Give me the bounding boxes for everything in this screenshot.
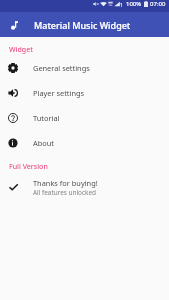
staticText: All features unlocked (33, 188, 96, 197)
staticText: Player settings (33, 88, 85, 98)
staticText: Material Music Widget (34, 19, 131, 31)
staticText: Full Version (9, 162, 48, 172)
staticText: Thanks for buying! (33, 178, 98, 188)
staticText: General settings (33, 63, 90, 73)
staticText: 100% (126, 0, 142, 8)
staticText: 1 (120, 1, 124, 8)
button[interactable]: Thanks for buying! (0, 174, 169, 200)
button[interactable]: General settings (0, 55, 169, 80)
button[interactable]: Player settings (0, 80, 169, 105)
button[interactable]: About (0, 130, 169, 155)
staticText: Tutorial (33, 113, 60, 123)
button[interactable]: Tutorial (0, 105, 169, 130)
staticText: Widget (9, 45, 33, 55)
staticText: About (33, 138, 54, 148)
staticText: 07:00 (150, 0, 166, 8)
button[interactable]: App logo (0, 12, 26, 37)
